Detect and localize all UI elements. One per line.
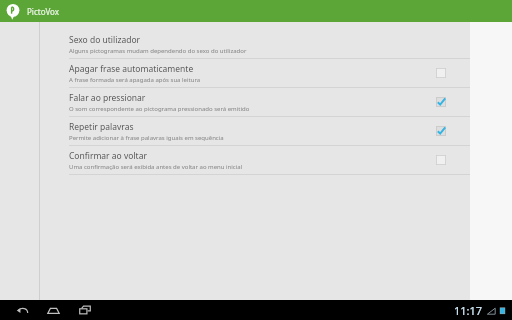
staticText: Sexo do utilizador [69, 34, 141, 46]
button[interactable]: Back [12, 300, 32, 320]
staticText: Alguns pictogramas mudam dependendo do s… [69, 47, 247, 55]
staticText: A frase formada será apagada após sua le… [69, 76, 201, 84]
button[interactable]: Falar ao pressionar [430, 91, 452, 113]
button[interactable]: Sexo do utilizador [40, 30, 470, 58]
staticText: 11:17 [454, 303, 483, 318]
staticText: PictoVox [27, 6, 60, 17]
button[interactable]: Apagar frase automaticamente [430, 62, 452, 84]
staticText: Repetir palavras [69, 121, 134, 133]
button[interactable]: Home [43, 300, 63, 320]
staticText: O som correspondente ao pictograma press… [69, 105, 250, 113]
button[interactable]: Repetir palavras [40, 117, 470, 145]
button[interactable]: Apagar frase automaticamente [40, 59, 470, 87]
staticText: Confirmar ao voltar [69, 150, 147, 162]
button[interactable]: PictoVox home [5, 3, 21, 19]
button[interactable]: Confirmar ao voltar [40, 146, 470, 174]
staticText: Permite adicionar à frase palavras iguai… [69, 134, 224, 142]
staticText: Uma confirmação será exibida antes de vo… [69, 163, 243, 171]
staticText: Falar ao pressionar [69, 92, 146, 104]
staticText: Apagar frase automaticamente [69, 63, 194, 75]
button[interactable]: Recent apps [75, 300, 95, 320]
button[interactable]: Repetir palavras [430, 120, 452, 142]
button[interactable]: Falar ao pressionar [40, 88, 470, 116]
button[interactable]: Confirmar ao voltar [430, 149, 452, 171]
